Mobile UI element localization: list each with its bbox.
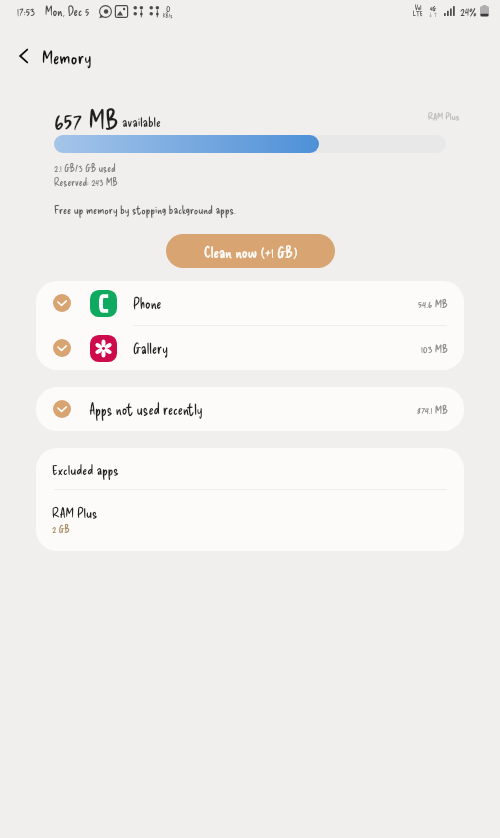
staticText: 0 [166,1,171,14]
button[interactable]: Gallery [36,326,464,370]
button[interactable]: Navigate up [0,32,48,80]
staticText: Reserved: 243 MB [54,175,118,188]
staticText: Gallery [133,339,168,357]
staticText: Vol [415,4,422,11]
staticText: Excluded apps [52,460,119,477]
button[interactable]: Clean now (+1 GB) [166,234,335,268]
staticText: ↓↑ [428,11,439,18]
staticText: 2.1 GB/3 GB used [54,161,116,174]
staticText: RAM Plus [52,503,98,520]
button[interactable]: Apps not used recently [36,387,464,431]
staticText: RAM Plus [428,110,460,122]
staticText: 24% [460,3,477,19]
staticText: Apps not used recently [89,400,203,418]
button[interactable]: RAM Plus [36,490,464,551]
staticText: 103 MB [421,341,448,355]
staticText: Phone [133,294,162,312]
staticText: Free up memory by stopping background ap… [54,202,236,216]
staticText: Memory [42,45,92,68]
staticText: Clean now (+1 GB) [204,242,298,261]
staticText: 54.6 MB [418,296,448,310]
staticText: 4G [430,4,437,12]
staticText: 17:53 [17,3,36,19]
staticText: 874.1 MB [417,402,448,416]
staticText: available [122,113,161,130]
staticText: 657 MB [54,102,119,134]
staticText: KB/s [163,12,173,19]
staticText: Mon, Dec 5 [45,3,90,19]
staticText: LTE [413,10,423,17]
button[interactable]: Phone [36,281,464,326]
staticText: 2 GB [52,522,70,535]
